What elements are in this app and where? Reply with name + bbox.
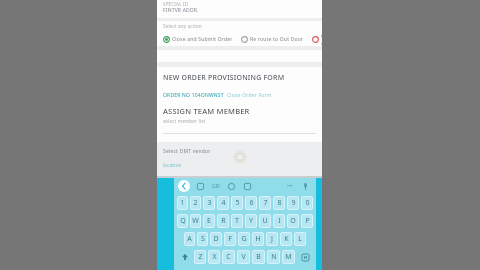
button[interactable]: 9 <box>287 196 299 210</box>
staticText: K <box>284 234 289 244</box>
button[interactable]: D <box>210 232 222 246</box>
button[interactable]: Z <box>194 250 206 264</box>
staticText: G <box>241 234 247 244</box>
button[interactable]: 1 <box>177 196 188 210</box>
button[interactable]: 5 <box>231 196 243 210</box>
staticText: 2 <box>193 198 198 208</box>
button[interactable]: 8 <box>273 196 285 210</box>
button[interactable]: U <box>259 214 271 228</box>
button[interactable]: G <box>238 232 250 246</box>
staticText: A <box>187 234 192 244</box>
button[interactable]: Canc <box>312 32 322 46</box>
staticText: B <box>256 252 261 262</box>
staticText: 4 <box>221 198 226 208</box>
staticText: V <box>241 252 246 262</box>
button[interactable]: S <box>197 232 208 246</box>
staticText: X <box>212 252 217 262</box>
staticText: J <box>271 234 273 244</box>
staticText: select member list <box>163 118 206 124</box>
staticText: P <box>305 216 310 226</box>
button[interactable]: Back <box>178 180 190 192</box>
staticText: F <box>228 234 232 244</box>
staticText: S <box>201 234 205 244</box>
staticText: ASSIGN TEAM MEMBER <box>163 106 250 116</box>
button[interactable]: X <box>208 250 220 264</box>
button[interactable]: Settings <box>243 182 252 191</box>
button[interactable]: M <box>282 250 295 264</box>
button[interactable]: A <box>184 232 195 246</box>
button[interactable]: Q <box>177 214 188 228</box>
button[interactable]: P <box>301 214 313 228</box>
staticText: Z <box>198 252 203 262</box>
staticText: L <box>298 234 302 244</box>
button[interactable]: GIF <box>212 183 220 190</box>
button[interactable]: T <box>231 214 243 228</box>
staticText: 0 <box>305 198 310 208</box>
staticText: ORDER NO 104ONWNST <box>163 92 224 99</box>
staticText: Canc <box>321 33 322 45</box>
button[interactable]: W <box>190 214 201 228</box>
button[interactable]: Backspace <box>297 249 313 265</box>
button[interactable]: H <box>252 232 264 246</box>
button[interactable]: More options <box>287 183 293 190</box>
staticText: M <box>285 252 292 262</box>
staticText: Y <box>249 216 253 226</box>
button[interactable]: 3 <box>203 196 215 210</box>
staticText: FINTVR ADDR. <box>163 7 199 14</box>
button[interactable]: Shift <box>177 249 192 265</box>
staticText: U <box>262 216 268 226</box>
button[interactable]: Close and Submit Order <box>163 35 233 44</box>
staticText: 3 <box>207 198 212 208</box>
staticText: T <box>235 216 239 226</box>
staticText: 7 <box>263 198 268 208</box>
staticText: R <box>221 216 226 226</box>
button[interactable]: Y <box>245 214 257 228</box>
button[interactable]: C <box>222 250 235 264</box>
staticText: GIF <box>212 183 220 190</box>
staticText: H <box>255 234 261 244</box>
button[interactable]: Clipboard <box>196 182 205 191</box>
button[interactable]: 0 <box>301 196 313 210</box>
staticText: Q <box>180 216 186 226</box>
button[interactable]: Voice input <box>301 182 310 191</box>
button[interactable]: V <box>237 250 250 264</box>
staticText: Re route to Out Door <box>250 36 304 43</box>
button[interactable]: 4 <box>217 196 229 210</box>
button[interactable]: O <box>287 214 299 228</box>
staticText: Close Order Form <box>227 92 272 99</box>
button[interactable]: J <box>266 232 278 246</box>
button[interactable]: 2 <box>190 196 201 210</box>
staticText: N <box>271 252 277 262</box>
button[interactable]: I <box>273 214 285 228</box>
staticText: location <box>163 162 182 168</box>
staticText: 1 <box>180 198 185 208</box>
button[interactable]: N <box>267 250 280 264</box>
staticText: D <box>213 234 219 244</box>
button[interactable]: 6 <box>245 196 257 210</box>
button[interactable]: B <box>252 250 265 264</box>
staticText: Select DMT vendor <box>163 148 211 155</box>
button[interactable]: F <box>224 232 236 246</box>
staticText: 6 <box>249 198 254 208</box>
staticText: O <box>290 216 296 226</box>
button[interactable]: L <box>294 232 306 246</box>
staticText: 8 <box>277 198 282 208</box>
button[interactable]: Re route to Out Door <box>241 35 304 44</box>
button[interactable]: E <box>203 214 215 228</box>
staticText: W <box>192 216 199 226</box>
staticText: Select any action <box>163 23 202 29</box>
button[interactable]: R <box>217 214 229 228</box>
staticText: I <box>278 216 281 226</box>
button[interactable]: K <box>280 232 292 246</box>
staticText: 5 <box>235 198 240 208</box>
staticText: C <box>226 252 231 262</box>
staticText: 9 <box>291 198 296 208</box>
button[interactable]: Close Order Form <box>227 92 272 99</box>
staticText: SPECIAL ID <box>163 1 189 7</box>
staticText: NEW ORDER PROVISIONING FORM <box>163 73 285 83</box>
button[interactable]: 7 <box>259 196 271 210</box>
staticText: Close and Submit Order <box>172 36 233 43</box>
button[interactable]: Sticker <box>227 182 236 191</box>
staticText: E <box>207 216 211 226</box>
